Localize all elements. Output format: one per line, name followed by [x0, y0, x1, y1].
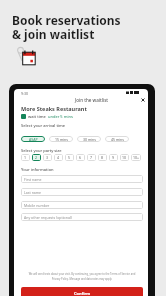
button[interactable]: 45 mins: [105, 136, 129, 142]
button[interactable]: First name: [21, 175, 143, 183]
button[interactable]: 9: [109, 154, 118, 161]
staticText: 9:30: [21, 91, 28, 96]
button[interactable]: 4: [54, 154, 63, 161]
staticText: Select your arrival time: [21, 123, 66, 128]
staticText: First name: [24, 177, 42, 182]
staticText: Confirm: [74, 291, 91, 296]
staticText: under 5 mins: [48, 114, 73, 119]
staticText: 30 mins: [83, 137, 96, 142]
button[interactable]: 2: [32, 154, 41, 161]
staticText: 4: [57, 155, 60, 160]
staticText: ASAP: [29, 137, 38, 142]
staticText: 45 mins: [111, 137, 124, 142]
staticText: Last name: [24, 190, 42, 195]
staticText: Book reservations & join waitlist: [12, 12, 121, 43]
staticText: 1: [24, 155, 27, 160]
staticText: We will send texts about your visit. By …: [21, 272, 143, 280]
button[interactable]: 6: [76, 154, 85, 161]
staticText: wait time: [28, 114, 46, 119]
button[interactable]: Last name: [21, 188, 143, 196]
button[interactable]: 3: [43, 154, 52, 161]
staticText: More Steaks Restaurant: [21, 105, 87, 112]
staticText: 9: [112, 155, 115, 160]
button[interactable]: 10: [120, 154, 129, 161]
button[interactable]: 10+: [131, 154, 141, 161]
staticText: 2: [35, 155, 38, 160]
button[interactable]: ASAP: [21, 136, 45, 142]
staticText: 10: [122, 155, 127, 160]
staticText: Join the waitlist: [75, 97, 109, 103]
staticText: Any other requests (optional): [24, 215, 72, 220]
staticText: 7: [90, 155, 93, 160]
staticText: 8: [101, 155, 104, 160]
button[interactable]: Any other requests (optional): [21, 213, 143, 221]
staticText: 6: [79, 155, 82, 160]
staticText: 3: [46, 155, 49, 160]
button[interactable]: 30 mins: [77, 136, 101, 142]
staticText: 15 mins: [55, 137, 68, 142]
button[interactable]: Confirm: [21, 287, 143, 296]
button[interactable]: Mobile number: [21, 201, 143, 209]
button[interactable]: 5: [65, 154, 74, 161]
staticText: Mobile number: [24, 203, 50, 208]
button[interactable]: 1: [21, 154, 30, 161]
button[interactable]: Close: [140, 97, 146, 103]
button[interactable]: 15 mins: [49, 136, 73, 142]
staticText: 5: [68, 155, 71, 160]
button[interactable]: 7: [87, 154, 96, 161]
staticText: Your information: [21, 167, 54, 172]
staticText: 10+: [133, 155, 140, 160]
button[interactable]: 8: [98, 154, 107, 161]
staticText: Select your party size: [21, 148, 62, 153]
